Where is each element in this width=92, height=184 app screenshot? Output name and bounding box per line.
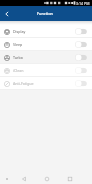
button[interactable]: Sleep — [0, 38, 92, 51]
button[interactable]: Home — [41, 173, 52, 184]
button[interactable]: Recents — [64, 173, 75, 184]
button[interactable]: Toggle — [75, 80, 88, 87]
button[interactable]: Toggle — [75, 67, 88, 74]
button[interactable]: Toggle — [75, 54, 88, 61]
staticText: Anti-Fatigue — [13, 81, 34, 86]
staticText: Turbo — [13, 55, 23, 60]
button[interactable]: Anti-Fatigue — [0, 77, 92, 90]
button[interactable]: Toggle — [75, 41, 88, 48]
button[interactable]: Back — [18, 173, 29, 184]
button[interactable]: Turbo — [0, 51, 92, 64]
button[interactable]: Menu — [3, 175, 10, 182]
button[interactable]: Toggle — [75, 28, 88, 35]
staticText: Function — [37, 11, 53, 16]
button[interactable]: Back — [0, 6, 13, 21]
staticText: 3:14 PM — [76, 1, 90, 6]
button[interactable]: iClean — [0, 64, 92, 77]
staticText: iClean — [13, 68, 24, 73]
staticText: Sleep — [13, 42, 23, 47]
staticText: Display — [13, 29, 26, 34]
button[interactable]: Display — [0, 25, 92, 38]
